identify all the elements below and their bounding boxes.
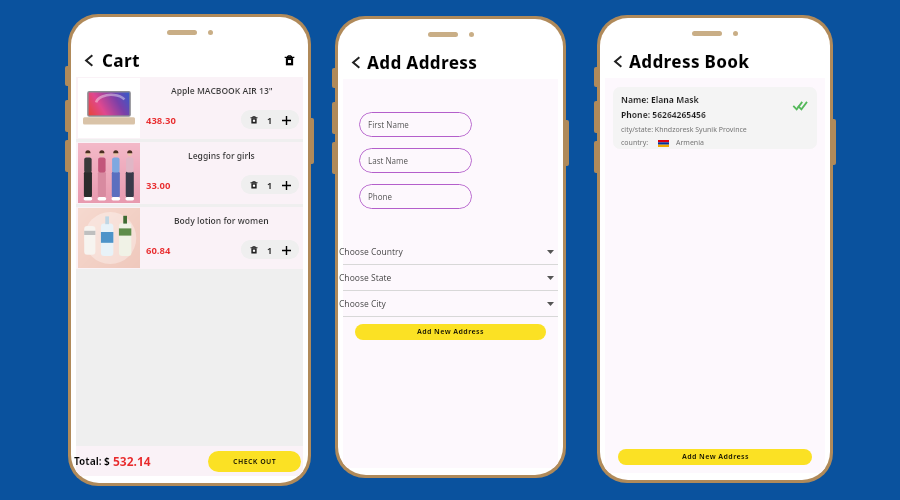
button[interactable]: Back [344, 50, 368, 74]
staticText: 1 [267, 114, 273, 126]
staticText: Total: $ [74, 454, 113, 468]
button[interactable]: Increase quantity [278, 112, 294, 128]
button[interactable]: Remove item [246, 177, 262, 193]
staticText: Choose Country [339, 246, 403, 258]
button[interactable]: Remove item [246, 112, 262, 128]
staticText: Armenia [676, 138, 704, 148]
button[interactable]: Choose City [343, 291, 558, 317]
button[interactable]: Phone [359, 184, 472, 209]
staticText: Add New Address [682, 452, 749, 462]
button[interactable]: Choose State [343, 265, 558, 291]
button[interactable]: Apple MACBOOK AIR 13" [76, 77, 303, 139]
button[interactable]: Add New Address [355, 324, 546, 340]
staticText: CHECK OUT [233, 457, 277, 467]
button[interactable]: Back [606, 49, 630, 73]
button[interactable]: Add New Address [618, 449, 812, 465]
staticText: city/state: Khndzoresk Syunik Province [621, 125, 747, 135]
button[interactable]: Back [77, 48, 101, 72]
staticText: Name: Elana Mask [621, 94, 699, 106]
staticText: 33.00 [146, 179, 171, 192]
button[interactable]: Leggins for girls [76, 142, 303, 204]
button[interactable]: Increase quantity [278, 177, 294, 193]
staticText: Leggins for girls [188, 150, 255, 162]
staticText: Phone [368, 191, 393, 202]
staticText: Body lotion for women [174, 215, 269, 227]
button[interactable]: CHECK OUT [208, 451, 301, 472]
staticText: Add Address [367, 51, 478, 74]
staticText: 1 [267, 244, 273, 256]
staticText: 438.30 [146, 114, 176, 127]
button[interactable]: Increase quantity [278, 242, 294, 258]
button[interactable]: Choose Country [343, 239, 558, 265]
staticText: 1 [267, 179, 273, 191]
button[interactable]: Name: Elana Mask [613, 87, 817, 149]
staticText: Phone: 56264265456 [621, 109, 706, 121]
staticText: Choose City [339, 298, 386, 310]
staticText: Last Name [368, 155, 409, 166]
button[interactable]: First Name [359, 112, 472, 137]
button[interactable]: Body lotion for women [76, 207, 303, 269]
staticText: 532.14 [113, 453, 151, 469]
button[interactable]: Remove item [246, 242, 262, 258]
staticText: Choose State [339, 272, 392, 284]
button[interactable]: Last Name [359, 148, 472, 173]
other: Default address [793, 101, 807, 110]
staticText: Apple MACBOOK AIR 13" [171, 85, 273, 97]
button[interactable]: Clear cart [278, 49, 300, 71]
staticText: 60.84 [146, 244, 171, 257]
staticText: country: [621, 138, 649, 148]
staticText: Add New Address [417, 327, 484, 337]
staticText: Address Book [629, 50, 750, 73]
staticText: Cart [102, 49, 140, 72]
staticText: First Name [368, 119, 409, 130]
